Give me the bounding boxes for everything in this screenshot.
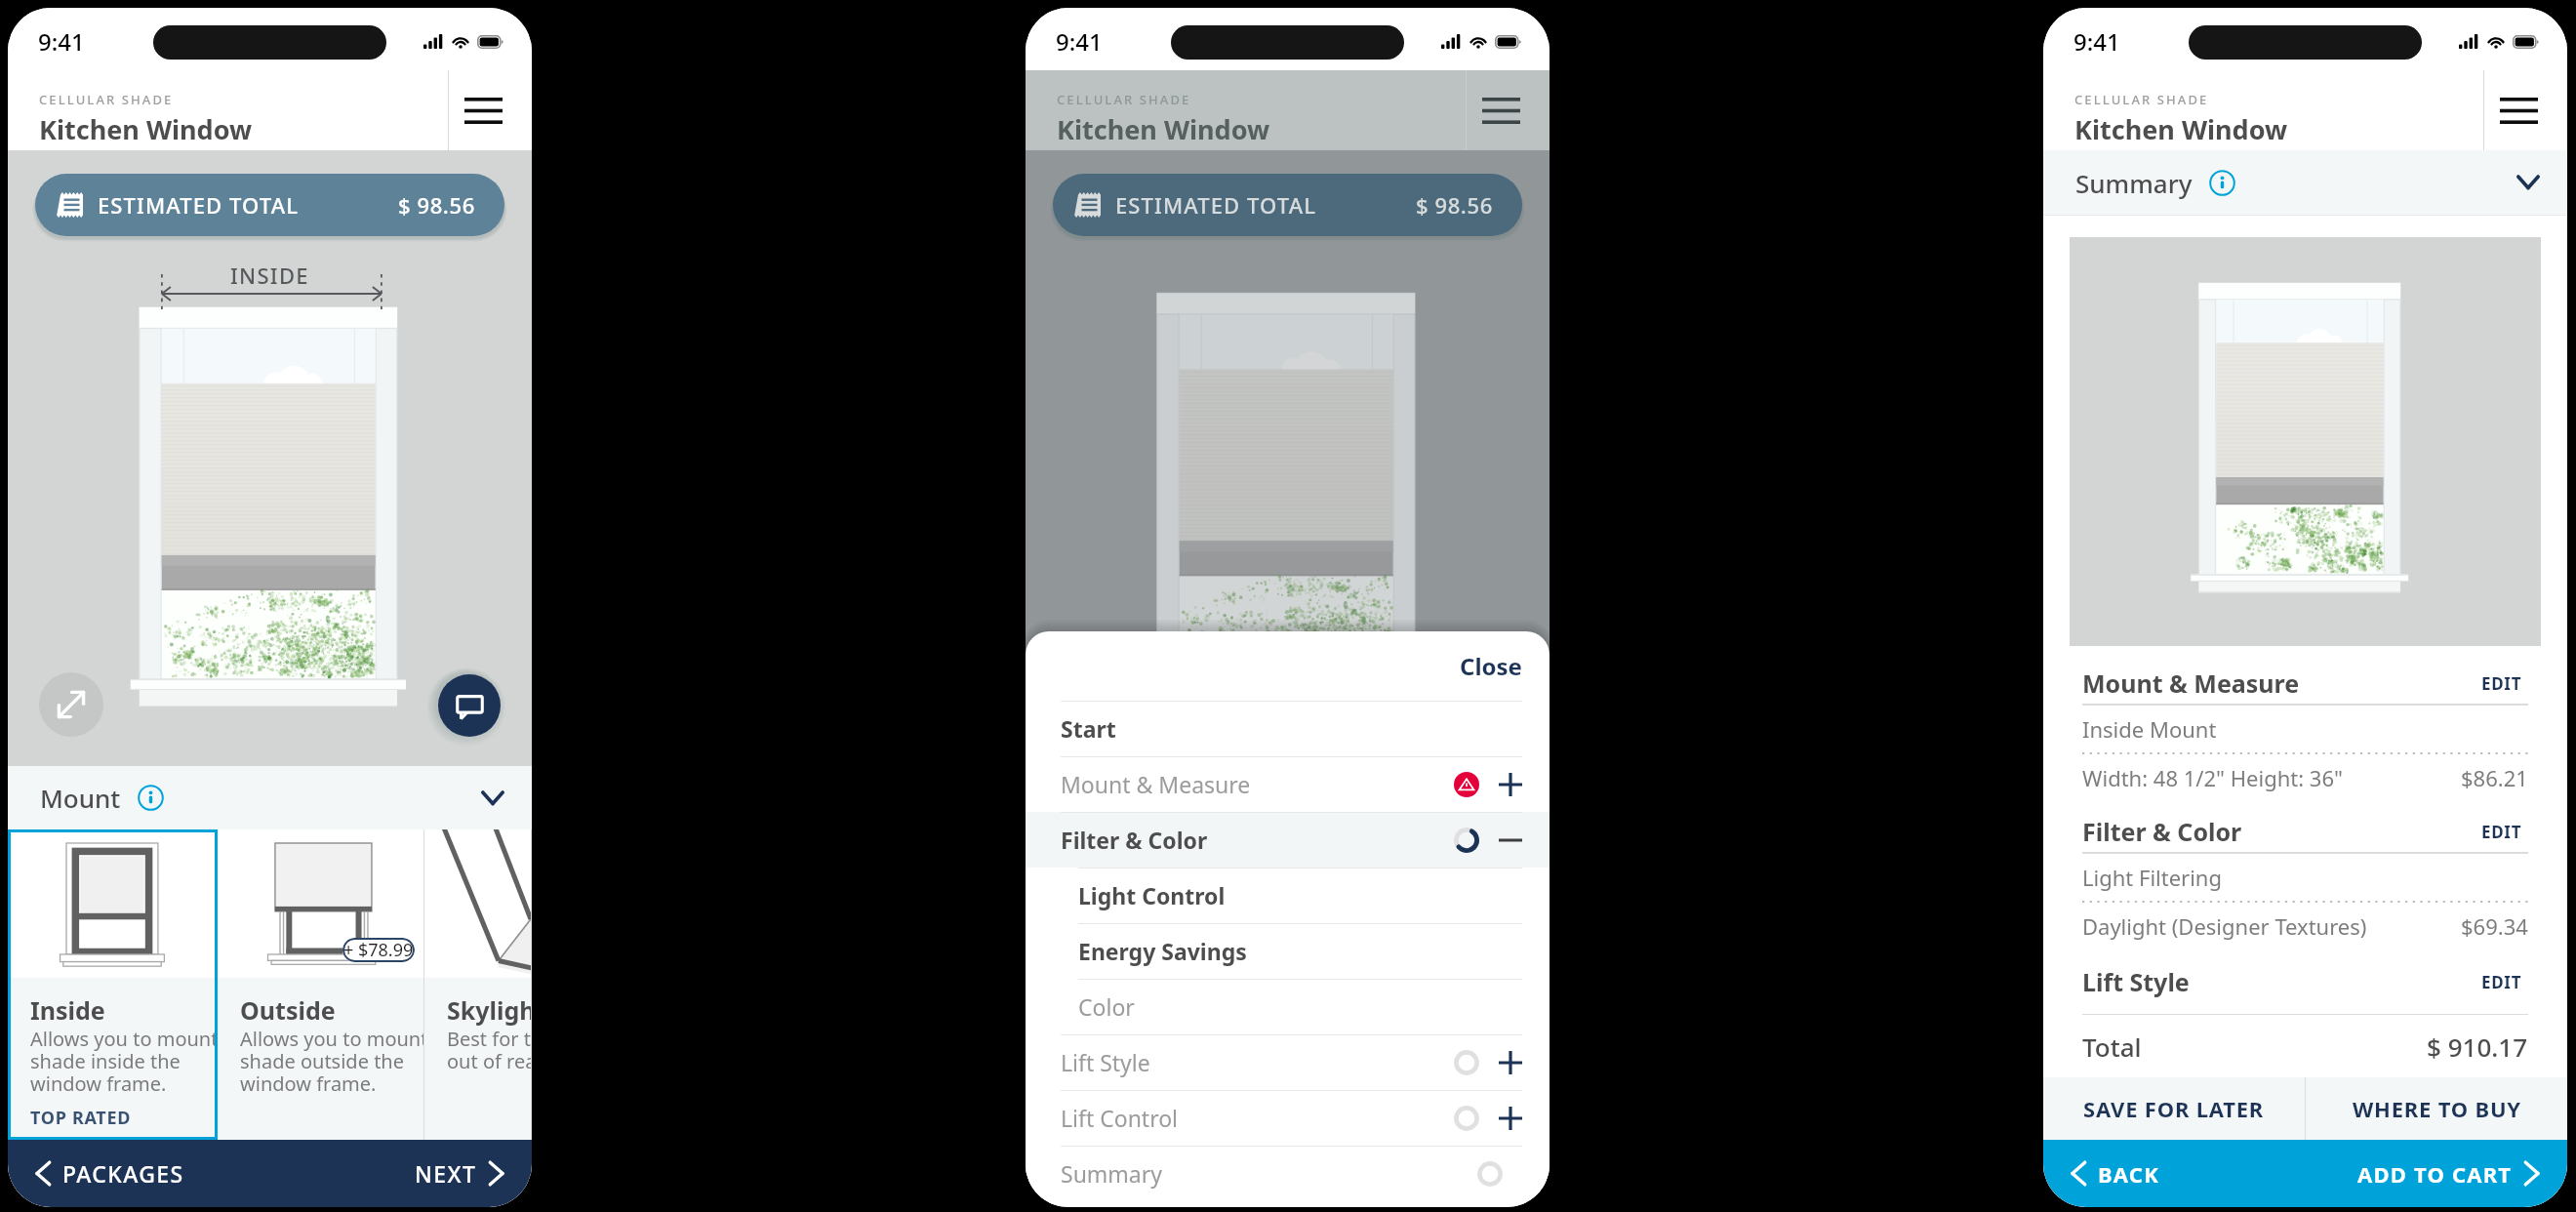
button[interactable]: Chat [438, 674, 501, 737]
button[interactable]: + $78.99 [218, 829, 424, 1140]
staticText: Kitchen Window [2074, 111, 2288, 147]
button[interactable]: Close [1448, 642, 1534, 690]
staticText: Kitchen Window [39, 111, 253, 147]
staticText: EDIT [2481, 971, 2522, 993]
staticText: Inside Mount [2082, 714, 2217, 744]
staticText: Allows you to mount shade inside the win… [30, 1026, 218, 1097]
staticText: 9:41 [2073, 25, 2120, 58]
button[interactable]: EDIT [2475, 963, 2528, 1001]
staticText: Allows you to mount shade outside the wi… [240, 1026, 424, 1097]
button[interactable]: Menu [1473, 83, 1528, 138]
staticText: Best for ta out of reac [447, 1026, 532, 1074]
staticText: TOP RATED [30, 1106, 132, 1130]
staticText: Lift Style [1061, 1047, 1150, 1077]
staticText: Close [1460, 650, 1522, 682]
button[interactable]: Mount [8, 766, 532, 829]
staticText: Start [1061, 713, 1116, 744]
button[interactable]: ESTIMATED TOTAL [35, 174, 504, 236]
button[interactable]: WHERE TO BUY [2306, 1077, 2567, 1140]
button[interactable]: Summary [1026, 1146, 1550, 1201]
button[interactable]: Filter & Color [1026, 812, 1550, 868]
staticText: Mount & Measure [2082, 667, 2300, 700]
staticText: + $78.99 [343, 938, 414, 962]
staticText: ESTIMATED TOTAL [98, 190, 299, 220]
button[interactable]: Light Control [1026, 868, 1550, 923]
staticText: Filter & Color [1061, 825, 1208, 855]
button[interactable]: ESTIMATED TOTAL [1053, 174, 1522, 236]
staticText: Mount [40, 781, 121, 815]
staticText: ADD TO CART [2357, 1159, 2513, 1189]
staticText: 9:41 [1056, 25, 1103, 58]
staticText: EDIT [2481, 821, 2522, 843]
staticText: EDIT [2481, 672, 2522, 695]
button[interactable]: Inside [8, 829, 218, 1140]
staticText: Summary [1061, 1158, 1162, 1189]
staticText: INSIDE [230, 261, 309, 290]
staticText: $69.34 [2461, 911, 2528, 941]
staticText: Light Control [1078, 880, 1226, 910]
button[interactable]: EDIT [2475, 665, 2528, 703]
staticText: Summary [2075, 166, 2193, 200]
staticText: Lift Style [2082, 965, 2190, 998]
staticText: ESTIMATED TOTAL [1115, 190, 1316, 220]
button[interactable]: Summary [2043, 150, 2567, 215]
button[interactable]: Color [1026, 979, 1550, 1034]
staticText: WHERE TO BUY [2353, 1094, 2521, 1123]
staticText: 9:41 [38, 25, 85, 58]
staticText: NEXT [415, 1158, 477, 1189]
staticText: Inside [30, 993, 105, 1027]
button[interactable]: Lift Control [1026, 1090, 1550, 1146]
staticText: BACK [2098, 1159, 2159, 1189]
staticText: $ 98.56 [1416, 190, 1493, 220]
button[interactable]: Menu [2491, 83, 2546, 138]
staticText: Kitchen Window [1057, 111, 1270, 147]
button[interactable]: Expand view [39, 672, 103, 737]
staticText: CELLULAR SHADE [39, 91, 174, 108]
button[interactable]: PACKAGES [8, 1140, 198, 1207]
staticText: Light Filtering [2082, 863, 2223, 892]
staticText: $ 98.56 [398, 190, 475, 220]
staticText: Energy Savings [1078, 936, 1247, 966]
staticText: PACKAGES [62, 1158, 184, 1189]
button[interactable]: ADD TO CART [2344, 1140, 2567, 1207]
staticText: Width: 48 1/2" Height: 36" [2082, 763, 2343, 792]
other: Collapse [481, 790, 504, 806]
button[interactable]: NEXT [401, 1140, 532, 1207]
staticText: CELLULAR SHADE [1057, 91, 1191, 108]
button[interactable]: Start [1026, 701, 1550, 756]
staticText: Skylight [447, 993, 532, 1027]
button[interactable]: Menu [456, 83, 510, 138]
button[interactable]: Lift Style [1026, 1034, 1550, 1090]
staticText: Mount & Measure [1061, 769, 1251, 799]
staticText: Outside [240, 993, 336, 1027]
staticText: $ 910.17 [2427, 1030, 2528, 1064]
staticText: Daylight (Designer Textures) [2082, 911, 2367, 941]
staticText: Color [1078, 991, 1135, 1022]
other: Collapse [2516, 175, 2540, 190]
button[interactable]: Mount & Measure [1026, 756, 1550, 812]
button[interactable]: Skylight [424, 829, 532, 1140]
button[interactable]: BACK [2043, 1140, 2173, 1207]
button[interactable]: Energy Savings [1026, 923, 1550, 979]
staticText: Filter & Color [2082, 815, 2242, 848]
staticText: SAVE FOR LATER [2083, 1094, 2265, 1123]
staticText: Total [2082, 1030, 2142, 1064]
button[interactable]: EDIT [2475, 813, 2528, 851]
button[interactable]: SAVE FOR LATER [2043, 1077, 2305, 1140]
staticText: Lift Control [1061, 1103, 1179, 1133]
staticText: CELLULAR SHADE [2074, 91, 2209, 108]
staticText: $86.21 [2461, 763, 2528, 792]
